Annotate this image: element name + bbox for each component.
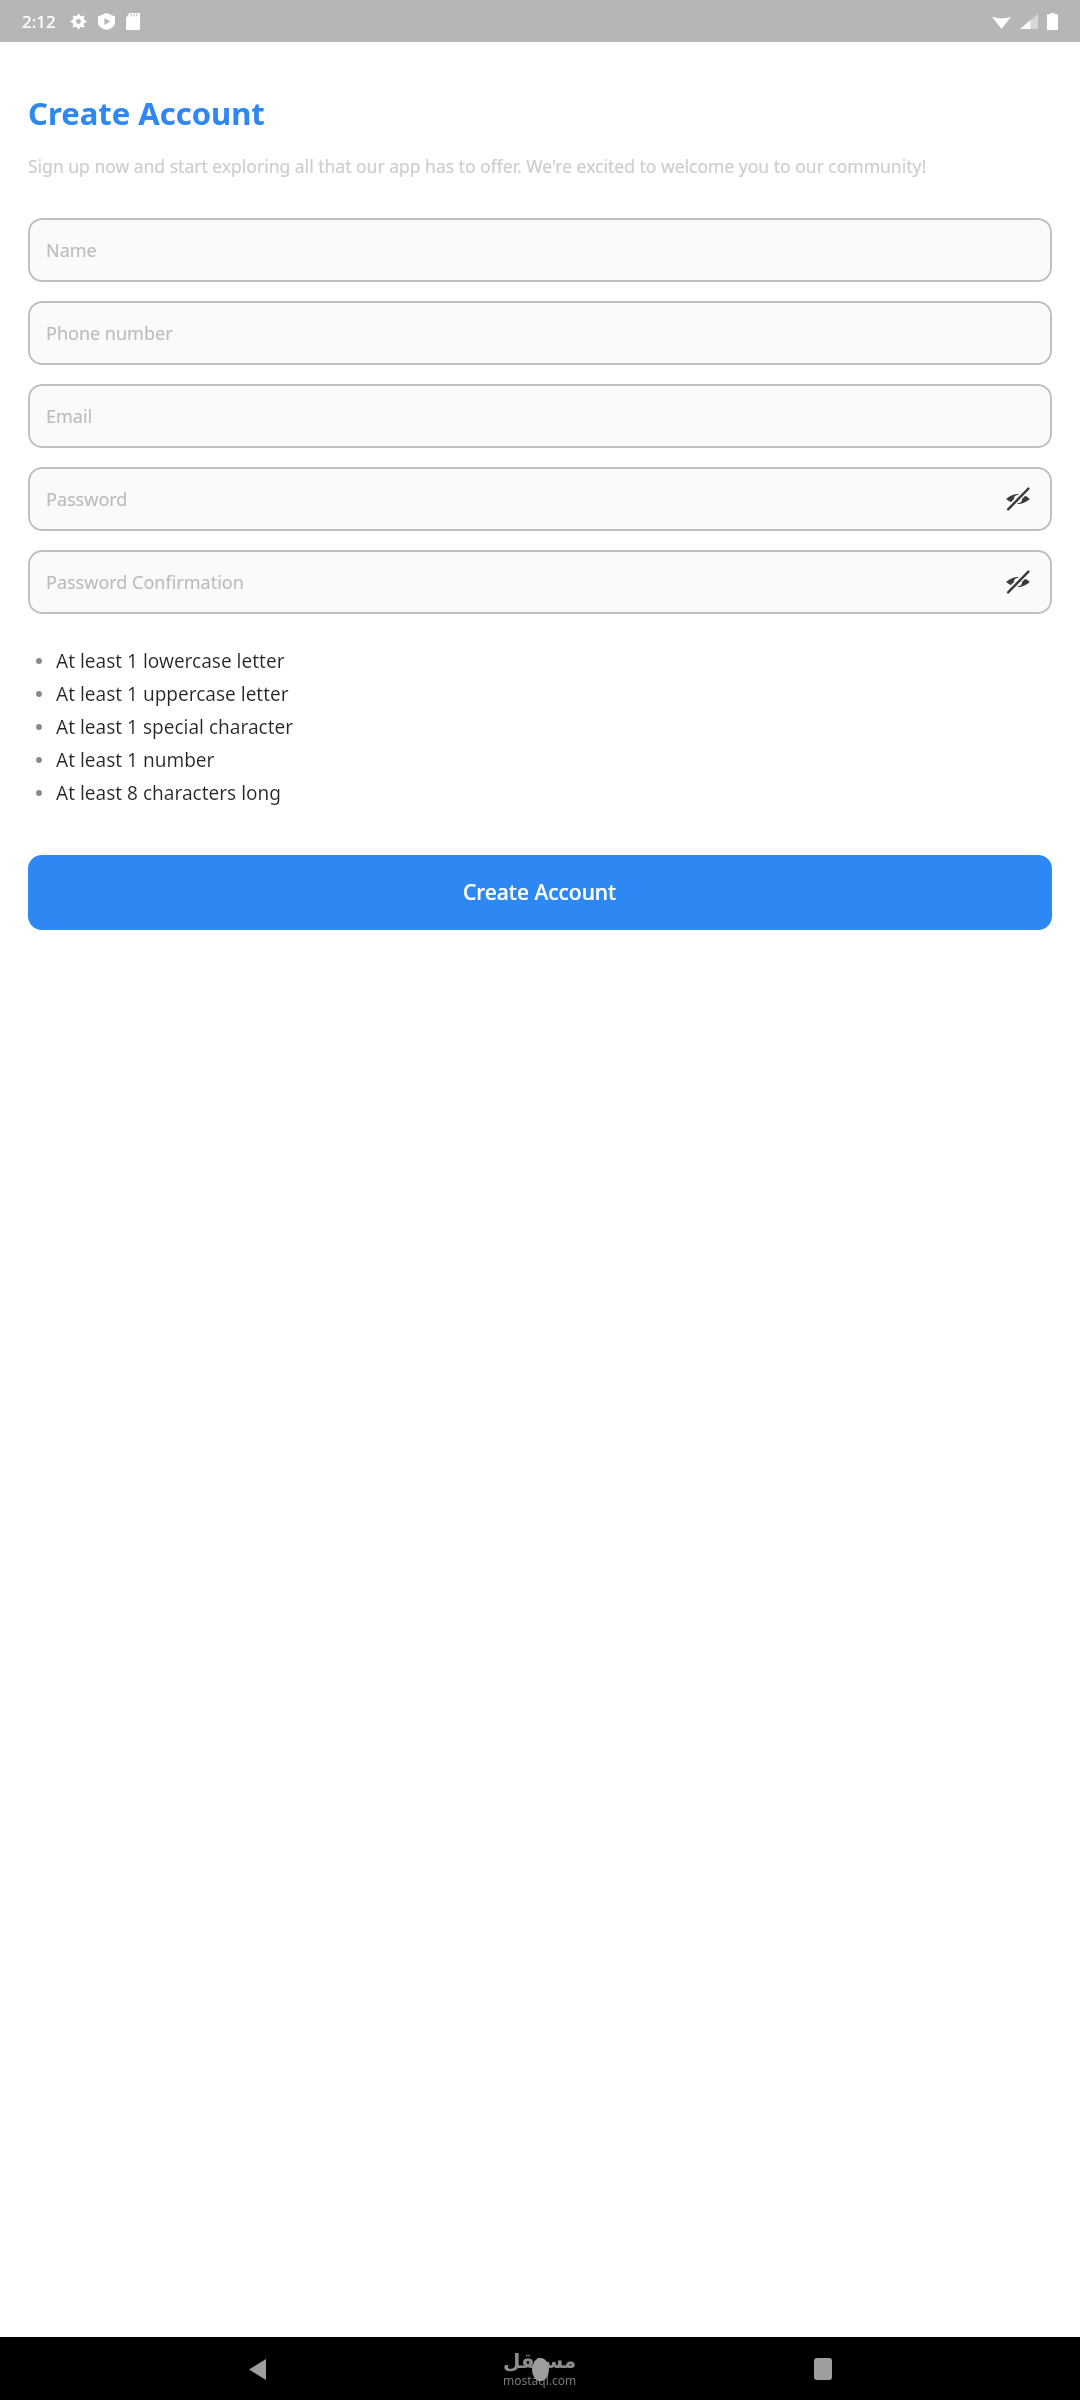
button[interactable]: Create Account [28,855,1052,930]
staticText: Create Account [463,878,617,907]
button[interactable]: Password Confirmation [28,550,1052,614]
button[interactable]: Home [514,2343,566,2395]
button[interactable]: Show password [1000,481,1036,517]
button[interactable]: Recent apps [797,2343,849,2395]
button[interactable]: Password [28,467,1052,531]
staticText: At least 1 special character [56,714,294,740]
button[interactable]: Email [28,384,1052,448]
button[interactable]: Phone number [28,301,1052,365]
staticText: At least 1 number [56,747,215,773]
staticText: Password [46,487,128,512]
button[interactable]: Show password [1000,564,1036,600]
staticText: Sign up now and start exploring all that… [28,154,927,178]
staticText: Create Account [28,92,265,134]
button[interactable]: Back [231,2343,283,2395]
staticText: Password Confirmation [46,570,244,595]
staticText: At least 1 lowercase letter [56,648,285,674]
staticText: Email [46,404,93,429]
staticText: 2:12 [22,10,56,33]
staticText: At least 1 uppercase letter [56,681,289,707]
staticText: At least 8 characters long [56,780,281,806]
button[interactable]: Name [28,218,1052,282]
staticText: mostaql.com [503,2372,577,2388]
staticText: Name [46,238,97,263]
staticText: مستقل [503,2349,577,2372]
staticText: Phone number [46,321,173,346]
